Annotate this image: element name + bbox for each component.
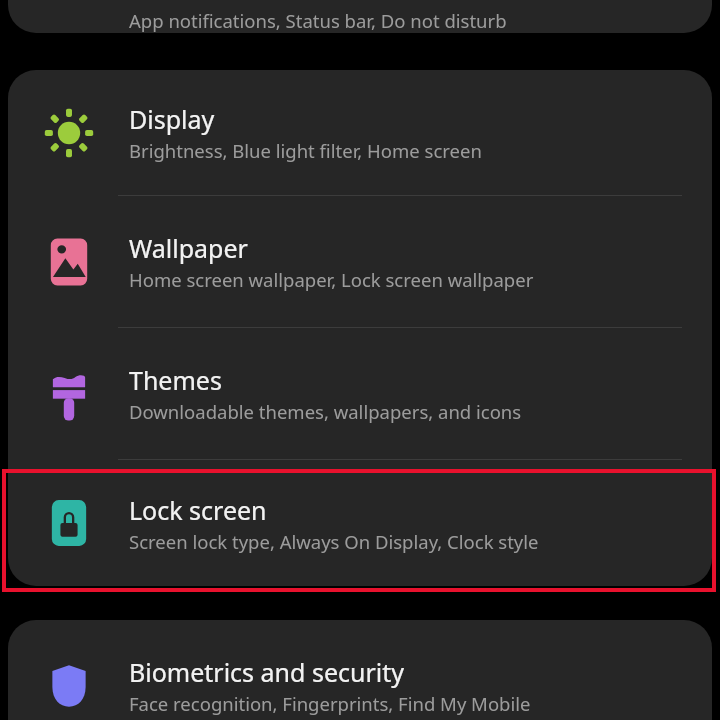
button[interactable]: Display	[8, 70, 712, 195]
button[interactable]: Notifications	[8, 0, 712, 33]
staticText: Display	[129, 102, 215, 136]
staticText: Brightness, Blue light filter, Home scre…	[129, 138, 482, 163]
staticText: Screen lock type, Always On Display, Clo…	[129, 529, 539, 554]
staticText: Downloadable themes, wallpapers, and ico…	[129, 399, 522, 424]
button[interactable]: Wallpaper	[8, 196, 712, 327]
staticText: Biometrics and security	[129, 655, 405, 689]
staticText: Themes	[129, 363, 222, 397]
staticText: Lock screen	[129, 493, 267, 527]
button[interactable]: Lock screen	[8, 460, 712, 586]
staticText: Wallpaper	[129, 231, 248, 265]
button[interactable]: Biometrics and security	[8, 623, 712, 720]
staticText: Face recognition, Fingerprints, Find My …	[129, 691, 531, 716]
button[interactable]: Themes	[8, 328, 712, 459]
staticText: Home screen wallpaper, Lock screen wallp…	[129, 267, 534, 292]
staticText: App notifications, Status bar, Do not di…	[129, 8, 507, 33]
